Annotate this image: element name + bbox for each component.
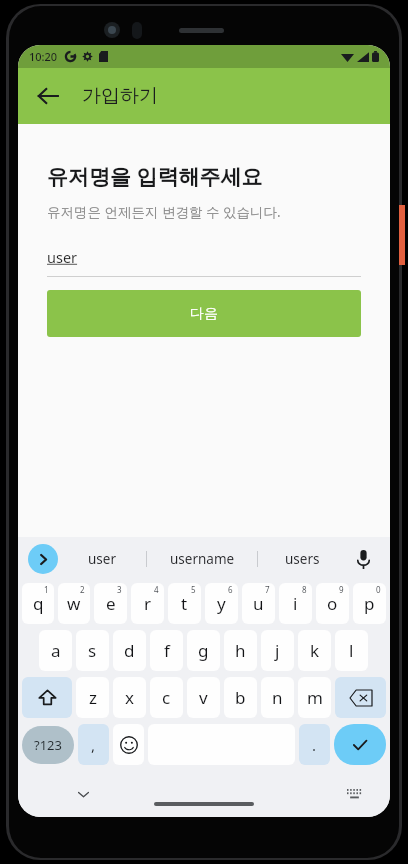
staticText: 유저명을 입력해주세요 <box>47 162 263 191</box>
button[interactable]: ?123 <box>22 726 74 764</box>
staticText: v <box>199 686 208 709</box>
staticText: user <box>88 550 116 568</box>
button[interactable]: d <box>113 630 146 671</box>
button[interactable]: y <box>205 583 238 624</box>
button[interactable]: . <box>299 724 330 765</box>
button[interactable]: users <box>258 537 346 581</box>
button[interactable]: More suggestions <box>28 544 58 574</box>
button[interactable]: e <box>94 583 127 624</box>
staticText: 9 <box>339 584 344 595</box>
staticText: a <box>51 639 61 662</box>
button[interactable]: p <box>353 583 386 624</box>
button[interactable]: user <box>47 247 361 277</box>
staticText: b <box>235 686 246 709</box>
staticText: 2 <box>80 584 85 595</box>
staticText: g <box>198 639 209 662</box>
button[interactable]: c <box>150 677 183 718</box>
button[interactable]: z <box>76 677 109 718</box>
button[interactable]: w <box>58 583 90 624</box>
staticText: 0 <box>376 584 381 595</box>
staticText: 6 <box>228 584 233 595</box>
staticText: d <box>124 639 135 662</box>
staticText: . <box>312 735 317 755</box>
button[interactable]: g <box>187 630 220 671</box>
staticText: 7 <box>265 584 270 595</box>
staticText: r <box>144 592 152 615</box>
staticText: i <box>293 592 298 615</box>
button[interactable]: f <box>150 630 183 671</box>
staticText: , <box>91 735 96 755</box>
staticText: 5 <box>191 584 196 595</box>
button[interactable]: o <box>316 583 349 624</box>
staticText: z <box>89 686 97 709</box>
staticText: t <box>181 592 188 615</box>
button[interactable]: Voice input <box>346 537 380 581</box>
staticText: h <box>235 639 246 662</box>
staticText: users <box>285 550 320 568</box>
button[interactable]: l <box>335 630 368 671</box>
staticText: s <box>88 639 97 662</box>
staticText: 다음 <box>190 305 218 323</box>
button[interactable]: s <box>76 630 109 671</box>
button[interactable]: user <box>58 537 146 581</box>
staticText: 3 <box>117 584 122 595</box>
staticText: x <box>125 686 134 709</box>
button[interactable]: Back <box>26 74 70 118</box>
button[interactable]: u <box>242 583 275 624</box>
button[interactable]: n <box>261 677 294 718</box>
staticText: 10:20 <box>29 49 58 64</box>
button[interactable]: r <box>131 583 164 624</box>
button[interactable]: t <box>168 583 201 624</box>
button[interactable]: username <box>147 537 257 581</box>
button[interactable]: Key <box>22 677 72 718</box>
staticText: 4 <box>154 584 159 595</box>
button[interactable]: Key <box>335 677 386 718</box>
button[interactable]: Enter <box>334 724 386 765</box>
button[interactable]: b <box>224 677 257 718</box>
staticText: f <box>164 639 170 662</box>
staticText: y <box>217 592 226 615</box>
staticText: p <box>364 592 375 615</box>
staticText: m <box>307 686 323 709</box>
staticText: user <box>47 247 78 267</box>
staticText: e <box>106 592 116 615</box>
button[interactable]: x <box>113 677 146 718</box>
button[interactable]: i <box>279 583 312 624</box>
button[interactable]: a <box>39 630 72 671</box>
staticText: o <box>327 592 338 615</box>
staticText: n <box>272 686 283 709</box>
staticText: k <box>310 639 320 662</box>
button[interactable]: h <box>224 630 257 671</box>
staticText: 8 <box>302 584 307 595</box>
staticText: 가입하기 <box>82 84 158 108</box>
staticText: c <box>162 686 171 709</box>
button[interactable]: 다음 <box>47 290 361 337</box>
staticText: 유저명은 언제든지 변경할 수 있습니다. <box>47 203 281 221</box>
button[interactable]: Emoji <box>113 724 144 765</box>
staticText: username <box>170 550 235 568</box>
button[interactable]: Hide keyboard <box>66 777 100 811</box>
staticText: u <box>253 592 264 615</box>
button[interactable]: k <box>298 630 331 671</box>
button[interactable]: , <box>78 724 109 765</box>
staticText: w <box>67 592 81 615</box>
staticText: ?123 <box>34 736 62 754</box>
button[interactable]: q <box>22 583 54 624</box>
button[interactable]: v <box>187 677 220 718</box>
staticText: l <box>349 639 354 662</box>
button[interactable]: j <box>261 630 294 671</box>
button[interactable]: Switch keyboard <box>340 780 368 808</box>
button[interactable]: m <box>298 677 331 718</box>
staticText: 1 <box>44 584 49 595</box>
staticText: j <box>275 639 280 662</box>
staticText: q <box>33 592 44 615</box>
